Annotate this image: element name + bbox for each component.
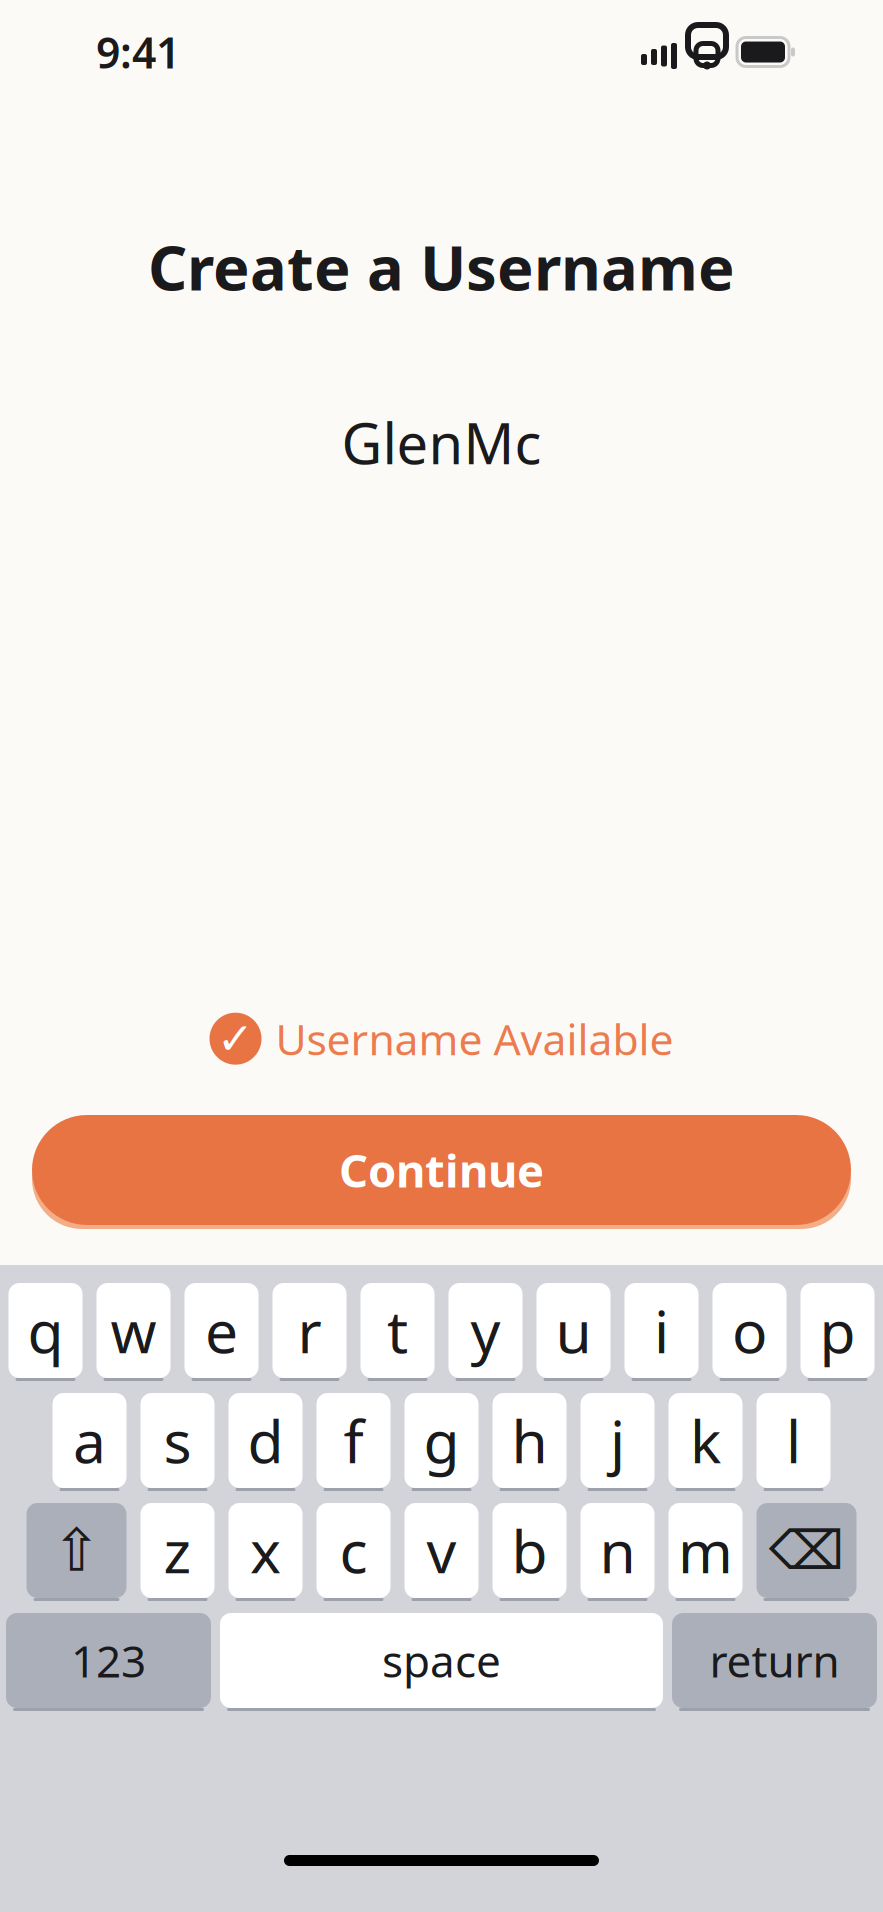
button[interactable]: t	[360, 1283, 434, 1381]
staticText: e	[205, 1291, 238, 1369]
staticText: ⌫	[769, 1520, 844, 1581]
button[interactable]: return	[672, 1613, 877, 1711]
staticText: l	[786, 1401, 801, 1479]
staticText: a	[73, 1401, 106, 1479]
button[interactable]: f	[316, 1393, 390, 1491]
staticText: 123	[71, 1631, 146, 1690]
button[interactable]: x	[228, 1503, 302, 1601]
button[interactable]: r	[272, 1283, 346, 1381]
button[interactable]: h	[492, 1393, 566, 1491]
staticText: v	[426, 1511, 456, 1589]
staticText: r	[297, 1291, 321, 1369]
button[interactable]: m	[668, 1503, 742, 1601]
button[interactable]: 123	[6, 1613, 211, 1711]
staticText: f	[343, 1401, 363, 1479]
staticText: u	[555, 1291, 591, 1369]
staticText: p	[819, 1291, 855, 1369]
staticText: j	[610, 1401, 625, 1479]
staticText: Create a Username	[148, 226, 735, 307]
staticText: b	[511, 1511, 547, 1589]
button[interactable]: Shift	[26, 1503, 126, 1601]
button[interactable]: e	[184, 1283, 258, 1381]
staticText: x	[250, 1511, 281, 1589]
button[interactable]: p	[800, 1283, 874, 1381]
staticText: i	[654, 1291, 669, 1369]
button[interactable]: u	[536, 1283, 610, 1381]
staticText: h	[511, 1401, 547, 1479]
staticText: o	[732, 1291, 767, 1369]
staticText: w	[110, 1291, 156, 1369]
staticText: ✓	[217, 1014, 254, 1064]
staticText: k	[690, 1401, 721, 1479]
button[interactable]: b	[492, 1503, 566, 1601]
staticText: q	[27, 1291, 63, 1369]
button[interactable]: k	[668, 1393, 742, 1491]
button[interactable]: g	[404, 1393, 478, 1491]
staticText: 9:41	[96, 24, 180, 80]
staticText: ⇧	[52, 1517, 101, 1584]
button[interactable]: Continue	[0, 1111, 883, 1229]
staticText: t	[387, 1291, 408, 1369]
button[interactable]: z	[140, 1503, 214, 1601]
staticText: y	[470, 1291, 500, 1369]
button[interactable]: i	[624, 1283, 698, 1381]
button[interactable]: v	[404, 1503, 478, 1601]
staticText: z	[163, 1511, 191, 1589]
staticText: s	[163, 1401, 191, 1479]
button[interactable]: c	[316, 1503, 390, 1601]
staticText: g	[423, 1401, 459, 1479]
button[interactable]: j	[580, 1393, 654, 1491]
staticText: m	[678, 1511, 733, 1589]
staticText: n	[599, 1511, 635, 1589]
button[interactable]: w	[96, 1283, 170, 1381]
button[interactable]: s	[140, 1393, 214, 1491]
button[interactable]: d	[228, 1393, 302, 1491]
button[interactable]: o	[712, 1283, 786, 1381]
staticText: Continue	[339, 1140, 544, 1200]
button[interactable]: Delete	[756, 1503, 856, 1601]
button[interactable]: q	[8, 1283, 82, 1381]
button[interactable]: space	[220, 1613, 663, 1711]
button[interactable]: a	[52, 1393, 126, 1491]
button[interactable]: y	[448, 1283, 522, 1381]
staticText: space	[382, 1631, 501, 1690]
staticText: d	[247, 1401, 283, 1479]
staticText: c	[339, 1511, 367, 1589]
staticText: GlenMc	[341, 405, 541, 480]
button[interactable]: l	[756, 1393, 830, 1491]
button[interactable]: n	[580, 1503, 654, 1601]
staticText: return	[709, 1631, 839, 1690]
staticText: Username Available	[275, 1010, 673, 1067]
